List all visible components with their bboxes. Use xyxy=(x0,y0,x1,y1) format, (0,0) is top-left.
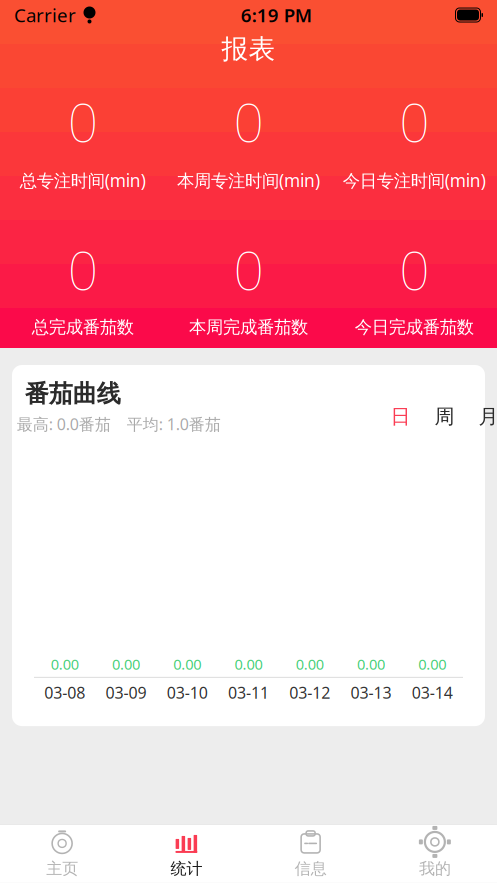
button[interactable]: 统计 xyxy=(124,825,248,883)
staticText: 0.00 xyxy=(234,654,262,674)
staticText: 6:19 PM xyxy=(241,3,312,27)
button[interactable]: 周 xyxy=(422,400,466,434)
staticText: 本周完成番茄数 xyxy=(189,317,308,338)
staticText: 主页 xyxy=(46,859,78,879)
staticText: 周 xyxy=(434,404,454,429)
staticText: 0 xyxy=(399,234,429,305)
staticText: 今日专注时间(min) xyxy=(343,169,486,192)
staticText: 0 xyxy=(68,86,98,157)
staticText: 0.00 xyxy=(112,654,140,674)
staticText: 03-10 xyxy=(167,682,208,703)
staticText: 统计 xyxy=(170,859,202,879)
staticText: 0.00 xyxy=(418,654,446,674)
staticText: Carrier xyxy=(14,3,76,27)
staticText: 03-14 xyxy=(412,682,453,703)
button[interactable]: 日 xyxy=(378,400,422,434)
staticText: 0 xyxy=(399,86,429,157)
staticText: 月 xyxy=(478,404,497,429)
staticText: 本周专注时间(min) xyxy=(177,169,320,192)
staticText: 日 xyxy=(390,404,410,429)
staticText: 0 xyxy=(68,234,98,305)
staticText: 信息 xyxy=(295,859,327,879)
button[interactable]: 月 xyxy=(466,400,497,434)
staticText: 03-11 xyxy=(228,682,269,703)
staticText: 今日完成番茄数 xyxy=(355,317,474,338)
staticText: 总完成番茄数 xyxy=(32,317,134,338)
staticText: 0.00 xyxy=(296,654,324,674)
button[interactable]: 我的 xyxy=(373,825,497,883)
staticText: 0.00 xyxy=(51,654,79,674)
staticText: 0 xyxy=(233,234,263,305)
button[interactable]: 信息 xyxy=(248,825,373,883)
staticText: 03-13 xyxy=(351,682,392,703)
staticText: 03-09 xyxy=(105,682,146,703)
staticText: 平均: 1.0番茄 xyxy=(127,413,221,435)
staticText: 报表 xyxy=(221,33,275,65)
staticText: 最高: 0.0番茄 xyxy=(17,413,111,435)
button[interactable]: 主页 xyxy=(0,825,124,883)
staticText: 我的 xyxy=(419,859,451,879)
staticText: 03-12 xyxy=(289,682,330,703)
staticText: 总专注时间(min) xyxy=(20,169,146,192)
staticText: 0.00 xyxy=(357,654,385,674)
staticText: 0 xyxy=(233,86,263,157)
staticText: 0.00 xyxy=(173,654,201,674)
staticText: 番茄曲线 xyxy=(25,379,121,408)
staticText: 03-08 xyxy=(44,682,85,703)
